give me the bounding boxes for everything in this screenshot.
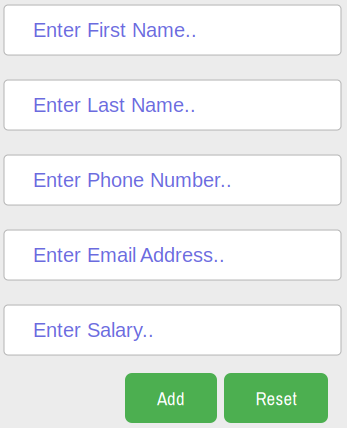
staticText: Enter Email Address.. (33, 244, 225, 266)
staticText: Enter Last Name.. (33, 94, 196, 116)
button[interactable]: Enter First Name.. (4, 5, 341, 55)
button[interactable]: Enter Phone Number.. (4, 155, 341, 205)
button[interactable]: Enter Salary.. (4, 305, 341, 355)
staticText: Reset (255, 386, 296, 411)
staticText: Enter First Name.. (33, 19, 197, 41)
button[interactable]: Enter Last Name.. (4, 80, 341, 130)
button[interactable]: Enter Email Address.. (4, 230, 341, 280)
button[interactable]: Reset (224, 373, 328, 423)
staticText: Enter Phone Number.. (33, 169, 232, 191)
button[interactable]: Add (125, 373, 217, 423)
staticText: Enter Salary.. (33, 319, 154, 341)
staticText: Add (157, 386, 185, 411)
